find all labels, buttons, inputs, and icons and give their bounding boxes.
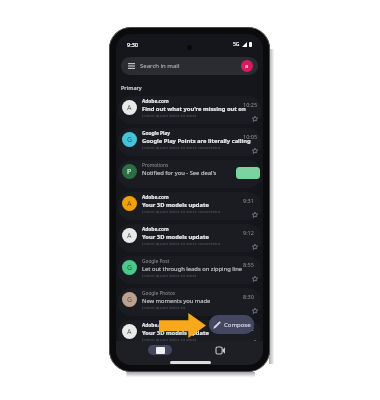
button[interactable]: Compose — [209, 315, 254, 334]
staticText: 8:30 — [243, 293, 254, 300]
staticText: G — [127, 295, 133, 305]
staticText: Lorem ipsum dolor sit amet — [142, 337, 197, 343]
button[interactable]: Search in mail — [121, 57, 258, 75]
staticText: Adobe.com — [142, 194, 169, 201]
staticText: Adobe.com — [142, 226, 169, 233]
staticText: Notified for you - See deal's — [142, 169, 217, 177]
button[interactable]: G — [118, 256, 261, 284]
staticText: Adobe.com — [142, 322, 169, 329]
staticText: Find out what you're missing out on — [142, 105, 246, 113]
staticText: 9:30 — [127, 41, 138, 48]
button[interactable]: P — [118, 160, 261, 188]
staticText: 8:02 — [243, 325, 254, 332]
staticText: A — [127, 199, 132, 209]
staticText: 10:05 — [243, 133, 258, 140]
staticText: A — [127, 327, 132, 337]
staticText: Your 3D models update — [142, 201, 209, 209]
button[interactable]: A — [118, 224, 261, 252]
staticText: P — [127, 167, 132, 177]
staticText: Primary — [121, 84, 142, 91]
staticText: 5G — [233, 41, 240, 48]
staticText: Google Photos — [142, 290, 176, 297]
staticText: 9:12 — [243, 229, 254, 236]
staticText: Lorem ipsum dolor sit amet consectetur — [142, 209, 221, 215]
staticText: Google Post — [142, 258, 170, 265]
staticText: Compose — [224, 321, 251, 329]
staticText: a — [245, 62, 249, 70]
staticText: Promotions — [142, 162, 169, 169]
staticText: Lorem ipsum dolor sit amet consectetur — [142, 241, 221, 247]
staticText: A — [127, 231, 132, 241]
staticText: Adobe.com — [142, 98, 169, 105]
staticText: 10:25 — [243, 101, 258, 108]
button[interactable]: Meet — [208, 345, 232, 355]
staticText: Search in mail — [140, 62, 180, 70]
button[interactable]: G — [118, 128, 261, 156]
button[interactable]: G — [118, 288, 261, 316]
staticText: Lorem ipsum dolor sit amet — [142, 113, 197, 119]
staticText: Lorem ipsum dolor sit — [142, 305, 186, 311]
staticText: 9:31 — [243, 197, 254, 204]
staticText: Your 3D models update — [142, 233, 209, 241]
button[interactable]: A — [118, 320, 261, 348]
staticText: Your 3D models update — [142, 329, 209, 337]
button[interactable]: A — [118, 192, 261, 220]
staticText: Google Play — [142, 130, 171, 137]
staticText: Let out through leads on zipping line — [142, 265, 243, 273]
staticText: A — [127, 103, 132, 113]
button[interactable]: Mail — [148, 345, 172, 355]
button[interactable]: A — [118, 96, 261, 124]
staticText: 8:55 — [243, 261, 254, 268]
staticText: New moments you made — [142, 297, 211, 305]
staticText: G — [127, 135, 133, 145]
staticText: Lorem ipsum dolor sit amet consectetur — [142, 145, 221, 151]
staticText: Lorem ipsum dolor sit amet — [142, 273, 197, 279]
staticText: Google Play Points are literally calling — [142, 137, 251, 145]
staticText: G — [127, 263, 133, 273]
